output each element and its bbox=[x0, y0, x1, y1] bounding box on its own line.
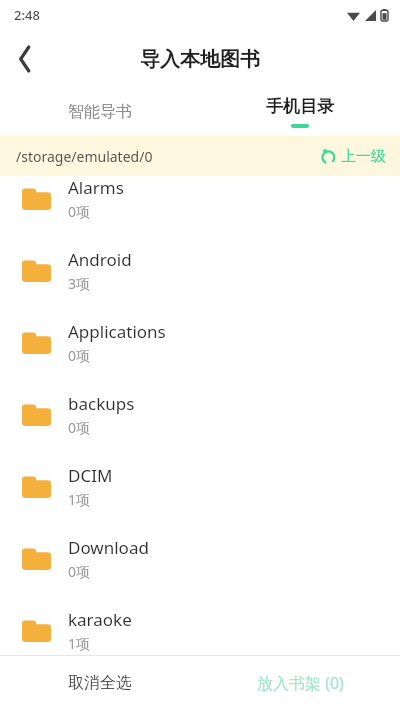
staticText: 导入本地图书 bbox=[140, 47, 260, 72]
button[interactable]: Android bbox=[0, 234, 400, 306]
staticText: DCIM bbox=[68, 464, 113, 487]
staticText: 取消全选 bbox=[68, 673, 132, 693]
staticText: /storage/emulated/0 bbox=[16, 147, 153, 166]
button[interactable]: Download bbox=[0, 522, 400, 594]
staticText: Download bbox=[68, 536, 149, 559]
staticText: Android bbox=[68, 248, 132, 271]
button[interactable]: Back bbox=[0, 34, 50, 84]
staticText: 手机目录 bbox=[266, 96, 334, 117]
staticText: Alarms bbox=[68, 176, 124, 199]
staticText: 0项 bbox=[68, 346, 91, 365]
button[interactable]: 取消全选 bbox=[0, 656, 200, 710]
staticText: 上一级 bbox=[341, 147, 386, 166]
button[interactable]: 上一级 bbox=[319, 147, 386, 166]
staticText: 1项 bbox=[68, 490, 91, 509]
staticText: karaoke bbox=[68, 608, 132, 631]
button[interactable]: backups bbox=[0, 378, 400, 450]
button[interactable]: DCIM bbox=[0, 450, 400, 522]
staticText: backups bbox=[68, 392, 135, 415]
staticText: 0项 bbox=[68, 418, 91, 437]
button[interactable]: 手机目录 bbox=[200, 88, 400, 136]
button[interactable]: 智能导书 bbox=[0, 88, 200, 136]
staticText: 放入书架 (0) bbox=[257, 672, 344, 694]
staticText: Applications bbox=[68, 320, 166, 343]
button[interactable]: 放入书架 (0) bbox=[200, 656, 400, 710]
button[interactable]: Applications bbox=[0, 306, 400, 378]
staticText: 3项 bbox=[68, 274, 91, 293]
staticText: 0项 bbox=[68, 562, 91, 581]
staticText: 2:48 bbox=[14, 6, 40, 24]
button[interactable]: Alarms bbox=[0, 162, 400, 234]
button[interactable]: karaoke bbox=[0, 594, 400, 666]
staticText: 1项 bbox=[68, 634, 91, 653]
staticText: 0项 bbox=[68, 202, 91, 221]
staticText: 智能导书 bbox=[68, 102, 132, 122]
